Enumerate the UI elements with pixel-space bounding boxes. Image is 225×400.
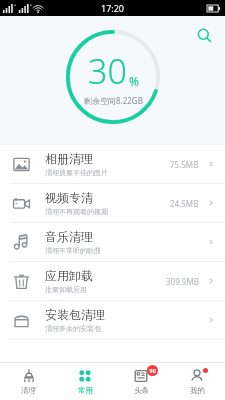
staticText: 30	[88, 48, 127, 94]
staticText: 常用	[78, 386, 93, 395]
staticText: 24.5MB	[170, 198, 199, 209]
button[interactable]: 应用卸载	[0, 262, 225, 300]
staticText: 视频专清	[45, 190, 93, 205]
staticText: 批量卸载应用	[45, 285, 87, 294]
button[interactable]: 常用	[57, 363, 113, 400]
staticText: 10	[149, 367, 156, 375]
staticText: %	[129, 73, 139, 89]
staticText: 音乐清理	[45, 229, 93, 244]
staticText: 清理多余的安装包	[45, 324, 101, 333]
staticText: 309.9MB	[166, 276, 199, 287]
staticText: 安装包清理	[45, 307, 105, 322]
staticText: 75.5MB	[170, 159, 199, 170]
button[interactable]: 音乐清理	[0, 223, 225, 261]
staticText: 清理不再观看的视频	[45, 207, 108, 216]
button[interactable]: 我的	[169, 363, 225, 400]
staticText: 17:20	[101, 2, 125, 14]
button[interactable]: 视频专清	[0, 184, 225, 222]
staticText: 清理	[21, 386, 36, 395]
staticText: 剩余空间8.22GB	[84, 95, 143, 106]
button[interactable]: 安装包清理	[0, 301, 225, 339]
button[interactable]: 相册清理	[0, 145, 225, 183]
staticText: 应用卸载	[45, 268, 93, 283]
staticText: 头条	[134, 386, 149, 395]
staticText: 清理质量不佳的图片	[45, 168, 108, 177]
button[interactable]: 清理	[0, 363, 57, 400]
staticText: 我的	[190, 386, 205, 395]
button[interactable]: 10	[113, 363, 169, 400]
button[interactable]: Search	[189, 20, 219, 50]
staticText: 清理不常听的歌曲	[45, 246, 101, 255]
staticText: 相册清理	[45, 151, 93, 166]
